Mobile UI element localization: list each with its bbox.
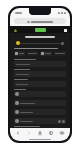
button[interactable] bbox=[14, 81, 66, 87]
button[interactable]: Step 2 bbox=[61, 42, 64, 45]
button[interactable]: Share bbox=[36, 129, 44, 137]
button[interactable]: Back bbox=[14, 129, 22, 137]
button[interactable] bbox=[40, 51, 52, 56]
button[interactable] bbox=[54, 51, 66, 56]
button[interactable]: Password help bbox=[62, 120, 65, 123]
button[interactable] bbox=[14, 51, 25, 56]
button[interactable] bbox=[27, 51, 38, 56]
button[interactable]: Step 1 bbox=[16, 41, 20, 45]
button[interactable] bbox=[14, 109, 66, 115]
button[interactable]: Home bbox=[35, 28, 46, 32]
button[interactable] bbox=[14, 91, 66, 97]
button[interactable]: Forward bbox=[25, 129, 33, 137]
button[interactable]: Show password bbox=[14, 118, 66, 124]
button[interactable]: Secure bbox=[13, 28, 17, 32]
button[interactable]: Bookmarks bbox=[47, 129, 55, 137]
button[interactable]: Tabs bbox=[58, 129, 66, 137]
button[interactable] bbox=[14, 100, 66, 106]
button[interactable]: Address bar bbox=[14, 18, 66, 24]
button[interactable]: Menu bbox=[63, 28, 67, 32]
button[interactable] bbox=[14, 61, 66, 67]
button[interactable] bbox=[14, 71, 66, 77]
button[interactable]: Show password bbox=[58, 120, 61, 123]
